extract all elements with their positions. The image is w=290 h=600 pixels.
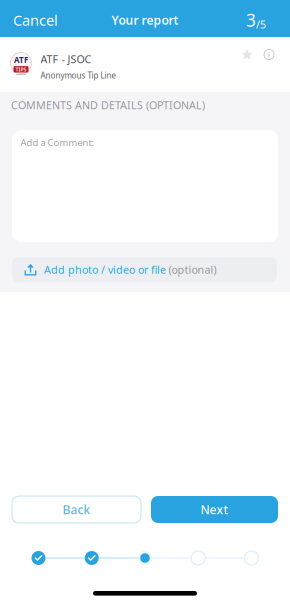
staticText: Cancel: [13, 10, 58, 30]
button[interactable]: Information: [260, 45, 278, 63]
staticText: (optional): [168, 263, 216, 277]
button[interactable]: Add photo / video or file: [12, 257, 277, 282]
staticText: COMMENTS AND DETAILS (OPTIONAL): [11, 98, 205, 112]
button[interactable]: Favorite: [238, 45, 256, 63]
button[interactable]: Cancel: [0, 0, 68, 37]
button[interactable]: Back: [12, 496, 141, 523]
staticText: 3: [246, 8, 256, 31]
staticText: Next: [200, 501, 228, 517]
staticText: Add photo / video or file: [44, 263, 166, 277]
staticText: TIPS: [15, 66, 26, 73]
staticText: Back: [62, 501, 90, 517]
staticText: Your report: [111, 12, 178, 28]
staticText: Anonymous Tip Line: [40, 70, 116, 81]
button[interactable]: Next: [151, 496, 278, 523]
staticText: ATF: [14, 54, 28, 65]
staticText: /5: [256, 17, 266, 31]
staticText: Add a Comment:: [20, 136, 94, 149]
staticText: ATF - JSOC: [40, 52, 91, 66]
